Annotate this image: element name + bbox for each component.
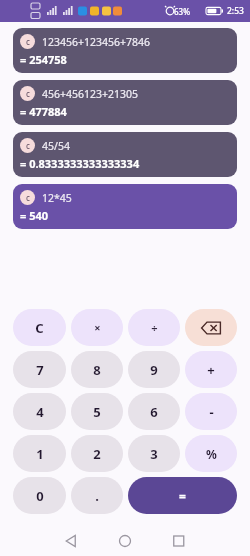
staticText: 8 — [93, 361, 101, 379]
button[interactable]: × — [71, 309, 123, 346]
button[interactable]: + — [185, 351, 237, 388]
button[interactable]: - — [185, 393, 237, 430]
staticText: 9 — [150, 361, 158, 379]
staticText: C — [35, 319, 44, 337]
staticText: 123456+123456+7846 — [42, 35, 151, 49]
staticText: % — [206, 446, 217, 462]
button[interactable]: 5 — [71, 393, 123, 430]
button[interactable]: 1 — [13, 435, 66, 472]
staticText: 3 — [150, 445, 158, 463]
staticText: c — [26, 36, 30, 47]
button[interactable]: c — [13, 28, 237, 73]
staticText: ÷ — [151, 320, 158, 335]
staticText: 0 — [36, 487, 44, 505]
button[interactable]: 8 — [71, 351, 123, 388]
button[interactable]: 9 — [128, 351, 180, 388]
button[interactable]: 7 — [13, 351, 66, 388]
staticText: c — [26, 140, 30, 151]
staticText: 456+456123+21305 — [42, 87, 139, 101]
staticText: 2 — [93, 445, 101, 463]
staticText: 2:53 — [227, 5, 244, 17]
button[interactable]: 0 — [13, 477, 66, 514]
staticText: 1 — [36, 445, 44, 463]
button[interactable]: 3 — [128, 435, 180, 472]
staticText: 63% — [174, 6, 190, 17]
button[interactable]: = — [128, 477, 237, 514]
button[interactable]: c — [13, 80, 237, 125]
button[interactable]: . — [71, 477, 123, 514]
staticText: = 540 — [20, 208, 49, 223]
button[interactable]: C — [13, 309, 66, 346]
staticText: c — [26, 192, 30, 203]
button[interactable]: % — [185, 435, 237, 472]
button[interactable]: 6 — [128, 393, 180, 430]
button[interactable]: ÷ — [128, 309, 180, 346]
button[interactable]: c — [13, 132, 237, 177]
staticText: 7 — [36, 361, 44, 379]
staticText: 5 — [93, 403, 101, 421]
button[interactable]: Backspace — [185, 309, 237, 346]
staticText: 6 — [150, 403, 158, 421]
button[interactable]: 2 — [71, 435, 123, 472]
button[interactable]: c — [13, 184, 237, 229]
staticText: - — [209, 403, 214, 421]
staticText: = 477884 — [20, 104, 67, 119]
staticText: 12*45 — [42, 191, 72, 205]
staticText: × — [94, 320, 101, 335]
staticText: c — [26, 88, 30, 99]
staticText: = 254758 — [20, 52, 67, 67]
button[interactable]: 4 — [13, 393, 66, 430]
staticText: + — [207, 361, 215, 379]
staticText: . — [95, 487, 99, 505]
staticText: 45/54 — [42, 139, 70, 153]
staticText: 4 — [36, 403, 44, 421]
staticText: = 0.8333333333333334 — [20, 156, 140, 171]
staticText: = — [179, 488, 186, 504]
